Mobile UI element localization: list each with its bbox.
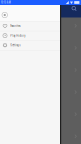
button[interactable]: Close menu — [0, 10, 9, 20]
button[interactable]: Favorites — [0, 21, 60, 31]
staticText: Play History — [10, 34, 25, 37]
button[interactable]: Settings — [0, 40, 60, 50]
button[interactable]: Play History — [0, 31, 60, 40]
staticText: 10:13 AM — [1, 1, 11, 4]
staticText: Settings — [10, 43, 20, 47]
staticText: Favorites — [10, 24, 20, 28]
button[interactable]: Search — [70, 4, 79, 13]
